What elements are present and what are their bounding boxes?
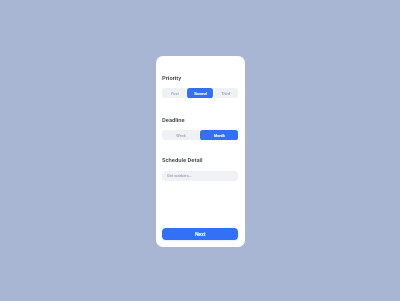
staticText: Third [221,91,230,95]
button[interactable]: Next [162,228,238,240]
button[interactable]: Week [162,130,200,140]
staticText: Schedule Detail [162,157,203,164]
staticText: Second [194,91,207,95]
staticText: Get workers... [167,173,193,178]
button[interactable]: First [162,88,187,98]
staticText: Next [195,231,206,237]
button[interactable]: Second [187,88,213,98]
button[interactable]: Get workers... [162,171,238,181]
button[interactable]: Month [200,130,238,140]
staticText: First [171,91,179,95]
staticText: Week [176,133,186,137]
staticText: Deadline [162,117,185,124]
staticText: Month [214,133,225,137]
staticText: Priority [162,75,182,82]
button[interactable]: Third [213,88,238,98]
